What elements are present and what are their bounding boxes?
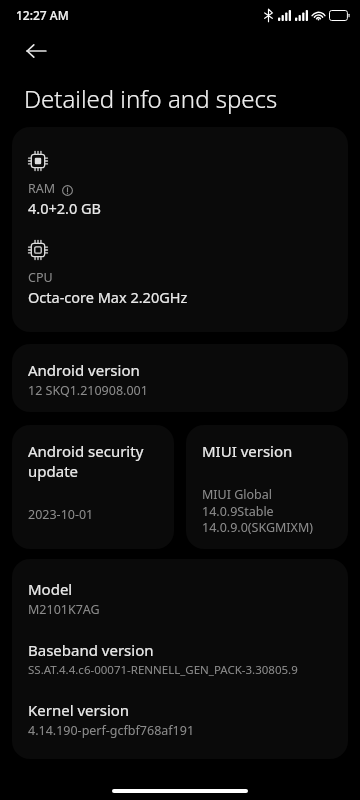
staticText: Android version xyxy=(28,360,140,380)
staticText: MIUI version xyxy=(202,441,293,461)
button[interactable]: Android security update xyxy=(12,425,174,549)
staticText: 12 SKQ1.210908.001 xyxy=(28,382,148,399)
staticText: Model xyxy=(28,579,73,599)
staticText: SS.AT.4.4.c6-00071-RENNELL_GEN_PACK-3.30… xyxy=(28,662,298,678)
button[interactable]: MIUI version xyxy=(186,425,348,549)
staticText: M2101K7AG xyxy=(28,601,100,618)
button[interactable]: RAM xyxy=(12,127,348,332)
staticText: MIUI Global 14.0.9Stable 14.0.9.0(SKGMIX… xyxy=(202,486,313,535)
staticText: CPU xyxy=(28,269,53,286)
staticText: 4.14.190-perf-gcfbf768af191 xyxy=(28,722,195,739)
staticText: Octa-core Max 2.20GHz xyxy=(28,287,188,307)
staticText: RAM xyxy=(28,180,56,197)
staticText: 12:27 AM xyxy=(16,7,69,23)
staticText: Kernel version xyxy=(28,700,130,720)
button[interactable]: Android version xyxy=(12,344,348,412)
staticText: Detailed info and specs xyxy=(24,82,278,115)
staticText: 4.0+2.0 GB xyxy=(28,198,101,218)
staticText: 2023-10-01 xyxy=(28,506,94,523)
button[interactable]: Back xyxy=(14,30,58,72)
button[interactable]: Model xyxy=(12,559,348,759)
staticText: Android security update xyxy=(28,441,144,481)
staticText: Baseband version xyxy=(28,640,154,660)
